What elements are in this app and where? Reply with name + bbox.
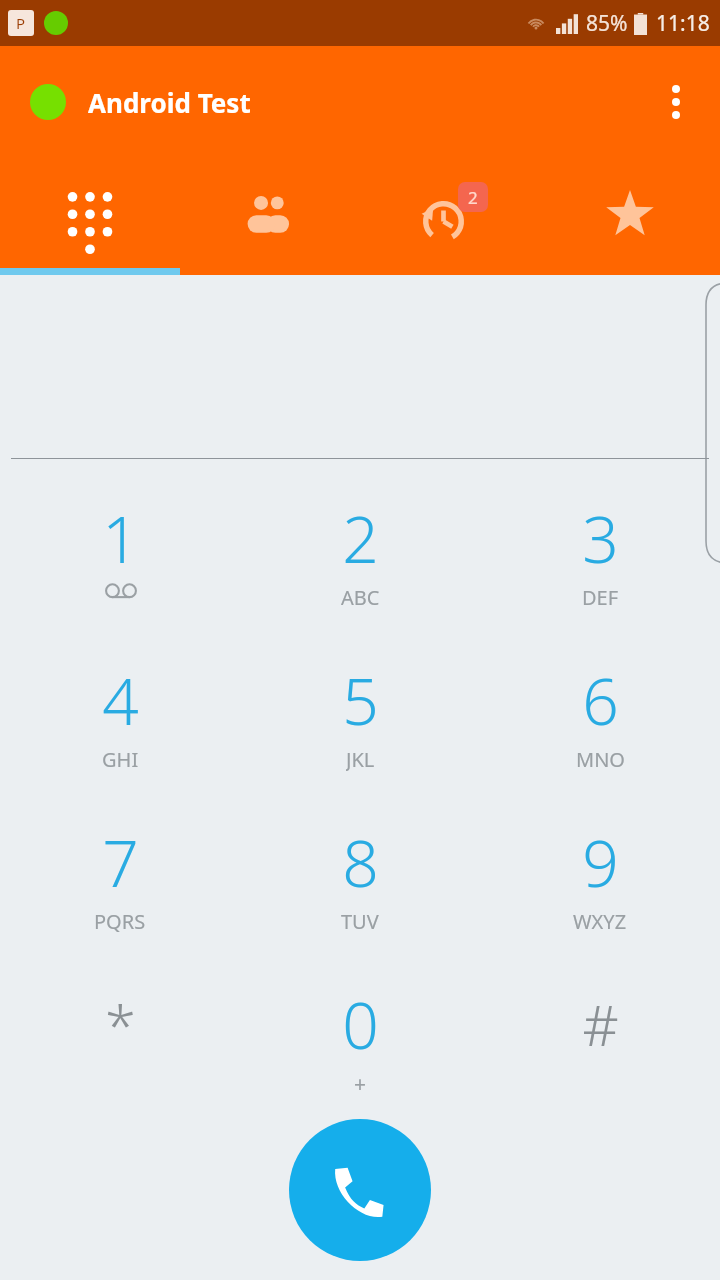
button[interactable]: 0 xyxy=(240,957,480,1119)
staticText: 2 xyxy=(468,186,478,209)
button[interactable]: 7 xyxy=(0,795,240,957)
staticText: 2 xyxy=(342,495,379,582)
button[interactable]: 4 xyxy=(0,633,240,795)
staticText: Android Test xyxy=(88,85,251,120)
staticText: 9 xyxy=(582,819,619,906)
staticText: GHI xyxy=(102,746,139,772)
staticText: 6 xyxy=(582,657,619,744)
button[interactable]: More options xyxy=(648,74,704,130)
staticText: DEF xyxy=(582,584,619,610)
staticText: PQRS xyxy=(94,908,146,934)
button[interactable]: 9 xyxy=(480,795,720,957)
button[interactable]: Android Test xyxy=(30,84,251,120)
button[interactable]: 8 xyxy=(240,795,480,957)
button[interactable]: Favourites xyxy=(540,158,720,268)
staticText: 1 xyxy=(102,495,139,582)
button[interactable]: 5 xyxy=(240,633,480,795)
button[interactable]: Call xyxy=(289,1119,431,1261)
staticText: 4 xyxy=(102,657,139,744)
staticText: 0 xyxy=(342,981,379,1068)
staticText: WXYZ xyxy=(573,908,627,934)
staticText: # xyxy=(582,986,619,1062)
staticText: MNO xyxy=(576,746,625,772)
button[interactable]: 6 xyxy=(480,633,720,795)
staticText: * xyxy=(105,986,136,1062)
staticText: 3 xyxy=(582,495,619,582)
button[interactable]: 1 xyxy=(0,471,240,633)
staticText: P xyxy=(16,13,26,33)
staticText: 5 xyxy=(342,657,379,744)
button[interactable]: * xyxy=(0,957,240,1119)
button[interactable]: 3 xyxy=(480,471,720,633)
button[interactable]: # xyxy=(480,957,720,1119)
staticText: 7 xyxy=(102,819,139,906)
staticText: 11:18 xyxy=(656,9,710,38)
staticText: 8 xyxy=(342,819,379,906)
button[interactable]: 2 xyxy=(240,471,480,633)
button[interactable]: Keypad xyxy=(0,158,180,268)
button[interactable]: Call history, 2 new xyxy=(360,158,540,268)
staticText: ABC xyxy=(341,584,380,610)
staticText: 85% xyxy=(586,9,628,38)
staticText: + xyxy=(354,1070,367,1096)
staticText: TUV xyxy=(341,908,379,934)
button[interactable]: Contacts xyxy=(180,158,360,268)
staticText: JKL xyxy=(346,746,375,772)
